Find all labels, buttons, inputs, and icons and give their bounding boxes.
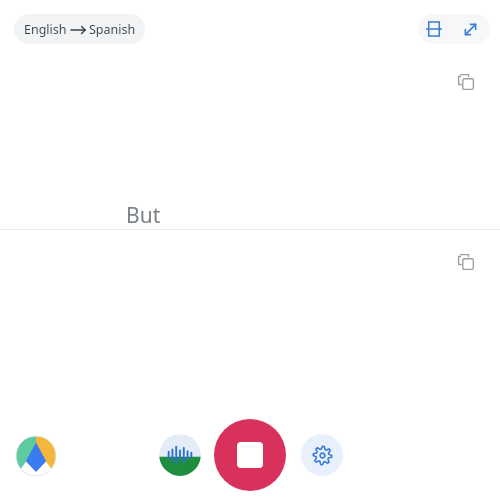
staticText: Spanish (89, 21, 136, 38)
button[interactable]: Copy text (452, 68, 480, 96)
button[interactable]: Settings (301, 434, 343, 476)
staticText: English (24, 21, 67, 38)
button[interactable]: Stop listening (214, 419, 286, 491)
button[interactable]: Expand to full screen (458, 17, 482, 41)
button[interactable]: Google Translate home (14, 434, 58, 478)
staticText: But (126, 201, 161, 230)
button[interactable]: Split screen view (422, 17, 446, 41)
button[interactable]: Transcribe audio (159, 434, 201, 476)
button[interactable]: Copy text (452, 248, 480, 276)
button[interactable]: English (14, 14, 145, 44)
